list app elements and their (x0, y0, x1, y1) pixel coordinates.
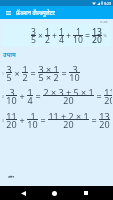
staticText: 1 (45, 26, 50, 38)
staticText: 3 (9, 86, 15, 98)
staticText: 1 (76, 26, 81, 38)
staticText: = (61, 67, 67, 79)
staticText: 1 (59, 26, 64, 38)
staticText: 10 (27, 118, 38, 130)
staticText: 10 (6, 94, 17, 106)
staticText: 11 (104, 86, 112, 98)
staticText: उपाय (3, 51, 16, 59)
staticText: 3 (31, 26, 36, 38)
staticText: 3 (72, 63, 78, 75)
staticText: + (19, 114, 25, 126)
staticText: + (19, 90, 25, 102)
staticText: = (30, 67, 36, 79)
staticText: = (96, 90, 102, 102)
staticText: 13 (92, 26, 102, 38)
staticText: × (38, 30, 43, 42)
staticText: 11 (6, 110, 17, 122)
staticText: 5 (6, 71, 12, 83)
staticText: + (52, 30, 57, 42)
staticText: 3 × 1 (38, 63, 59, 75)
staticText: = (40, 114, 46, 126)
staticText: % (103, 33, 107, 39)
button[interactable]: 3 (2, 23, 111, 47)
staticText: 2 (22, 71, 28, 83)
staticText: उत्तर (8, 174, 14, 179)
staticText: 2 × 3 + 5 × 1 (43, 86, 94, 98)
staticText: = (35, 90, 41, 102)
staticText: 5 (31, 34, 36, 46)
staticText: फ्रॅक्शन कॅल्क्युलेटर (16, 9, 55, 17)
staticText: 1 (30, 110, 36, 122)
staticText: 20 (92, 34, 102, 46)
staticText: 3 (2, 118, 4, 123)
staticText: 2 (2, 94, 4, 99)
button[interactable]: Recents (70, 186, 101, 200)
staticText: 20 (104, 94, 112, 106)
staticText: 8:23 (104, 1, 111, 6)
staticText: 10 (69, 71, 80, 83)
staticText: 5 × 2 (38, 71, 59, 83)
staticText: 1 (2, 71, 4, 76)
staticText: × (14, 67, 20, 79)
staticText: 13 (99, 110, 110, 122)
staticText: + (66, 30, 71, 42)
staticText: 2 (45, 34, 50, 46)
staticText: 20 (63, 94, 74, 106)
staticText: 0.65 (100, 20, 108, 25)
button[interactable]: Back (8, 186, 39, 200)
staticText: 1 (27, 86, 33, 98)
button[interactable]: Menu (0, 6, 16, 19)
staticText: = (91, 114, 97, 126)
button[interactable]: Home (39, 186, 70, 200)
staticText: 4 (27, 94, 33, 106)
staticText: 3 (6, 63, 12, 75)
staticText: 1 (22, 63, 28, 75)
staticText: 10 (73, 34, 83, 46)
staticText: 20 (6, 118, 17, 130)
staticText: 4 (59, 34, 64, 46)
staticText: 20 (63, 118, 74, 130)
staticText: 20 (99, 118, 110, 130)
staticText: = (85, 30, 90, 42)
button[interactable]: उपाय (3, 52, 16, 58)
staticText: 11 + 2 × 1 (48, 110, 89, 122)
